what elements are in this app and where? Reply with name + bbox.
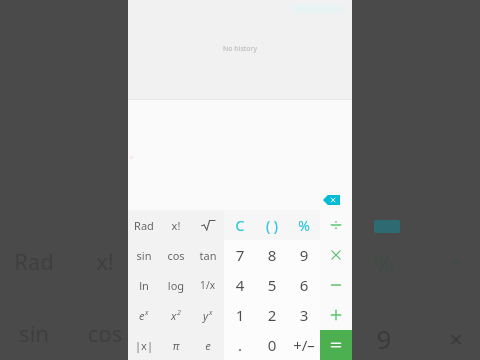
staticText: x (209, 308, 213, 318)
staticText: 5 (256, 275, 288, 295)
button[interactable]: Multiply (320, 240, 352, 270)
button[interactable]: . (224, 330, 256, 360)
staticText: 9 (288, 245, 320, 265)
staticText: 1 (224, 305, 256, 325)
button[interactable]: 9 (288, 240, 320, 270)
staticText: 2 (177, 308, 181, 318)
staticText: cos (82, 318, 128, 348)
button[interactable]: % (288, 210, 320, 240)
staticText: π (160, 338, 192, 353)
button[interactable]: e to the power x (128, 300, 160, 330)
staticText: . (224, 335, 256, 355)
staticText: 3 (288, 305, 320, 325)
staticText: Rad (128, 218, 160, 233)
staticText: |x| (128, 338, 160, 353)
button[interactable]: x! (160, 210, 192, 240)
button[interactable]: 7 (224, 240, 256, 270)
button[interactable]: Equals (320, 330, 352, 360)
button[interactable]: 1 (224, 300, 256, 330)
button[interactable]: Backspace (323, 195, 340, 205)
staticText: 7 (224, 245, 256, 265)
staticText: log (160, 278, 192, 293)
staticText: 2 (256, 305, 288, 325)
staticText: No history (128, 44, 352, 54)
staticText: Rad (8, 246, 60, 276)
button[interactable]: x squared (160, 300, 192, 330)
button[interactable]: Subtract (320, 270, 352, 300)
button[interactable]: Reciprocal (192, 270, 224, 300)
staticText: sin (128, 248, 160, 263)
staticText: /x (206, 278, 216, 292)
button[interactable]: cos (160, 240, 192, 270)
button[interactable]: ( ) (256, 210, 288, 240)
staticText: 8 (256, 245, 288, 265)
button[interactable]: +/– (288, 330, 320, 360)
staticText: y (203, 308, 209, 323)
staticText: e (192, 338, 224, 353)
staticText: 6 (288, 275, 320, 295)
staticText: 1 (200, 278, 206, 292)
staticText: ( ) (256, 216, 288, 235)
button[interactable]: log (160, 270, 192, 300)
button[interactable]: 5 (256, 270, 288, 300)
staticText: tan (192, 248, 224, 263)
button[interactable]: C (224, 210, 256, 240)
button[interactable]: 2 (256, 300, 288, 330)
button[interactable]: ln (128, 270, 160, 300)
staticText: +/– (288, 335, 320, 355)
staticText: C (224, 216, 256, 235)
button[interactable]: Add (320, 300, 352, 330)
button[interactable]: Square root (192, 210, 224, 240)
button[interactable]: 8 (256, 240, 288, 270)
button[interactable]: sin (128, 240, 160, 270)
button[interactable]: y to the power x (192, 300, 224, 330)
staticText: x (171, 308, 177, 323)
staticText: x (145, 308, 149, 318)
button[interactable]: 0 (256, 330, 288, 360)
button[interactable]: 3 (288, 300, 320, 330)
button[interactable]: 6 (288, 270, 320, 300)
staticText: % (288, 216, 320, 235)
staticText: e (139, 308, 145, 323)
staticText: x! (160, 218, 192, 233)
staticText: 4 (224, 275, 256, 295)
button[interactable]: π (160, 330, 192, 360)
button[interactable]: |x| (128, 330, 160, 360)
button[interactable]: Rad (128, 210, 160, 240)
button[interactable]: Divide (320, 210, 352, 240)
staticText: ln (128, 278, 160, 293)
staticText: 9 (358, 321, 410, 356)
button[interactable]: e (192, 330, 224, 360)
staticText: 0 (256, 335, 288, 355)
button[interactable]: 4 (224, 270, 256, 300)
staticText: cos (160, 248, 192, 263)
button[interactable]: tan (192, 240, 224, 270)
